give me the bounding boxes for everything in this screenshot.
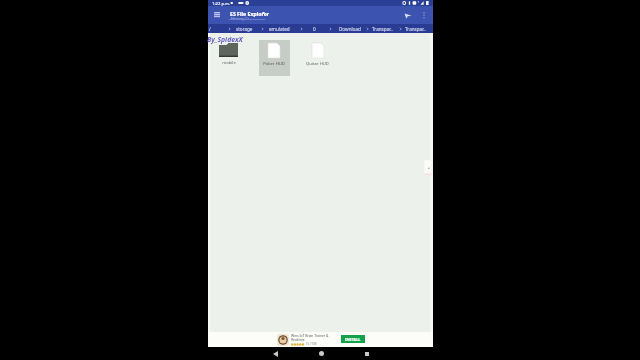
button[interactable]: Multi select <box>401 8 415 22</box>
button[interactable] <box>228 8 274 22</box>
staticText: ES File Explorer <box>230 10 270 17</box>
staticText: 0 <box>313 26 316 32</box>
staticText: Download <box>339 26 361 32</box>
button[interactable]: Poker HUD <box>251 40 296 76</box>
button[interactable]: mobile <box>206 40 251 76</box>
button[interactable]: Home <box>309 347 333 360</box>
staticText: Memory Ca <box>231 16 250 21</box>
button[interactable]: Back <box>263 347 287 360</box>
button[interactable]: Recent apps <box>355 347 379 360</box>
button[interactable]: Advertised app icon <box>277 334 289 346</box>
button[interactable]: Transpar.. <box>372 24 393 33</box>
staticText: Wins IoT Brain Trainer & <box>291 333 329 337</box>
staticText: 10.7 MB <box>306 342 317 346</box>
staticText: / <box>209 26 211 32</box>
staticText: 1:22 p.m. <box>212 1 231 7</box>
button[interactable]: INSTALL <box>341 335 365 343</box>
staticText: Transpar.. <box>405 26 426 32</box>
button[interactable]: More options <box>417 8 431 22</box>
staticText: Realtime <box>291 337 305 341</box>
button[interactable]: storage <box>236 24 253 33</box>
staticText: Quitar HUD <box>306 61 329 67</box>
staticText: Poker HUD <box>263 61 285 67</box>
button[interactable]: Quitar HUD <box>295 40 340 76</box>
staticText: emulated <box>269 26 290 32</box>
staticText: INSTALL <box>345 337 361 342</box>
staticText: storage <box>236 26 253 32</box>
button[interactable]: emulated <box>269 24 290 33</box>
staticText: By_SpidexX <box>207 35 243 44</box>
button[interactable]: Transpar.. <box>405 24 426 33</box>
button[interactable]: Floating shortcut <box>424 160 432 176</box>
staticText: mobile <box>222 60 236 66</box>
button[interactable]: Download <box>339 24 361 33</box>
button[interactable]: 0 <box>313 24 316 33</box>
button[interactable]: / <box>209 24 211 33</box>
button[interactable]: Navigation menu <box>210 8 223 20</box>
staticText: Transpar.. <box>372 26 393 32</box>
